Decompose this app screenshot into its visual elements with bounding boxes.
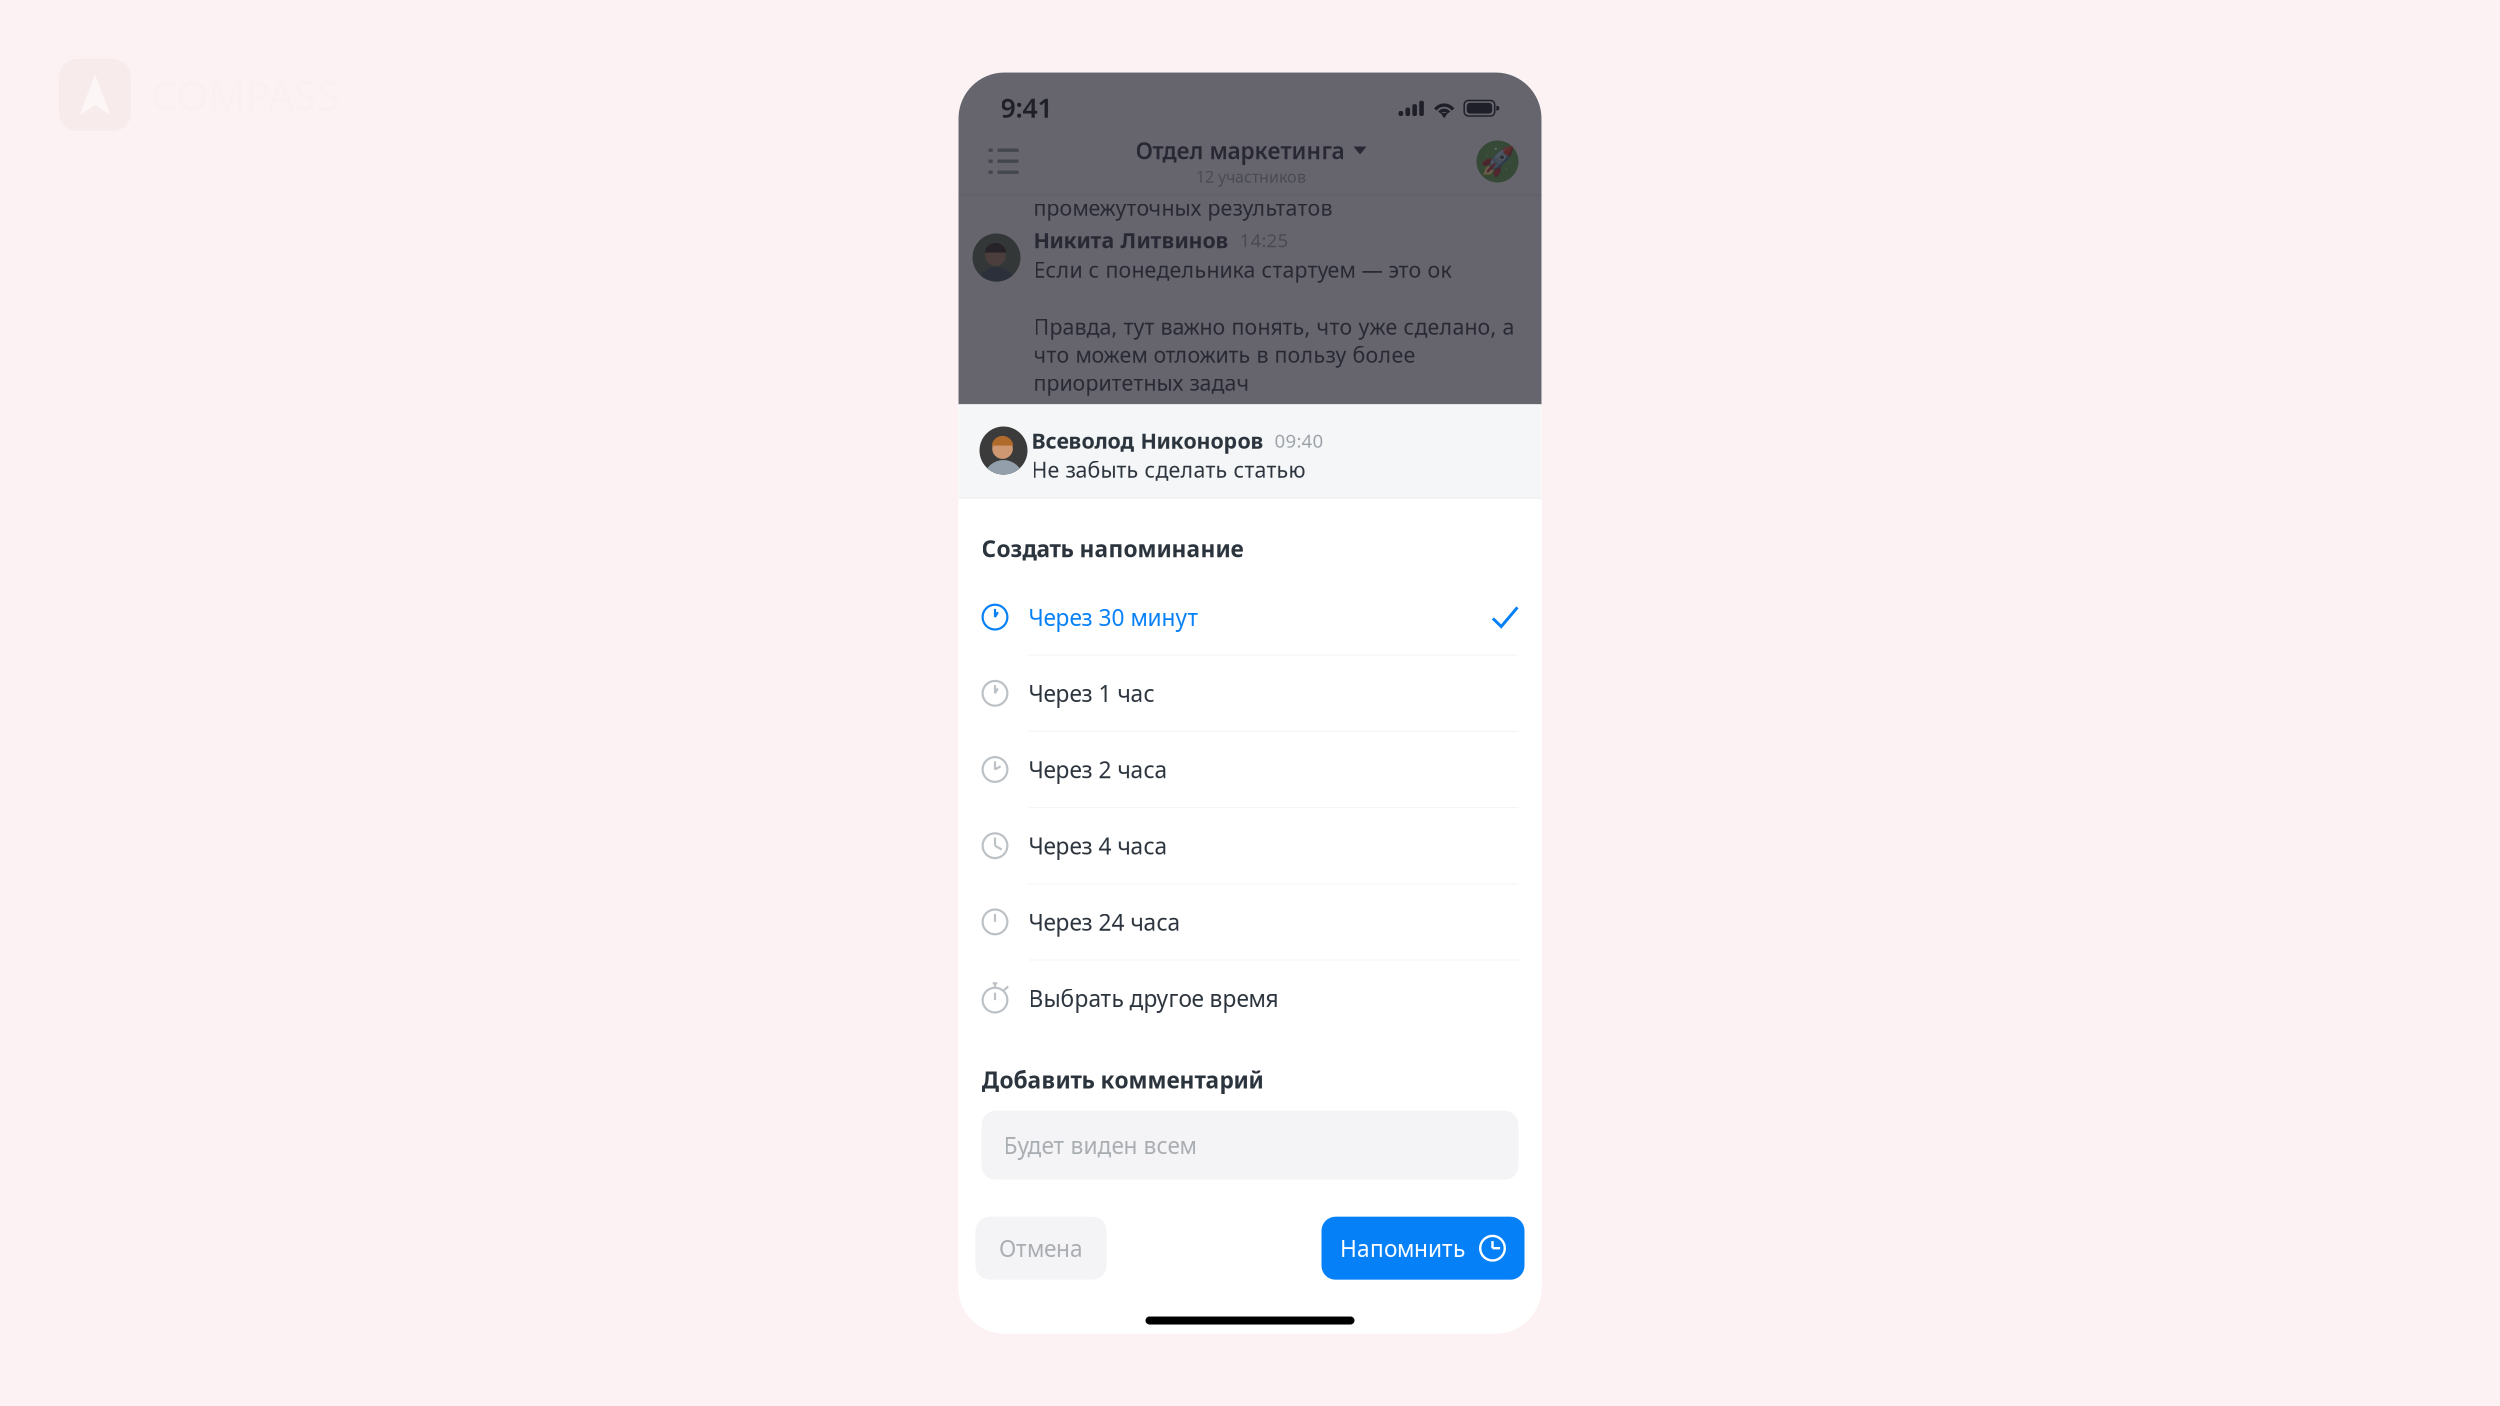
staticText: Будет виден всем xyxy=(1003,1130,1196,1160)
button[interactable]: Список тредов xyxy=(981,139,1025,183)
staticText: Создать напоминание xyxy=(981,533,1243,563)
button[interactable]: Отмена xyxy=(975,1217,1106,1280)
button[interactable]: Через 30 минут xyxy=(981,579,1518,656)
staticText: что можем отложить в пользу более xyxy=(1033,340,1415,369)
staticText: Никита Литвинов xyxy=(1033,226,1228,254)
staticText: Через 1 час xyxy=(1028,678,1154,708)
staticText: 9:41 xyxy=(1000,90,1052,125)
button[interactable]: Через 1 час xyxy=(981,656,1518,732)
button[interactable]: Выбрать другое время xyxy=(981,960,1518,1037)
staticText: 🚀 xyxy=(1480,145,1515,177)
button[interactable]: Через 2 часа xyxy=(981,732,1518,808)
button[interactable]: Через 4 часа xyxy=(981,808,1518,884)
button[interactable]: Участники чата xyxy=(1476,140,1518,182)
staticText: Отдел маркетинга xyxy=(1135,135,1344,165)
staticText: Если с понедельника стартуем — это ок xyxy=(1033,255,1451,284)
staticText: Через 4 часа xyxy=(1028,831,1167,861)
button[interactable]: Напомнить xyxy=(1321,1217,1524,1280)
staticText: Отмена xyxy=(999,1233,1083,1263)
staticText: Через 2 часа xyxy=(1028,754,1167,784)
staticText: 14:25 xyxy=(1239,228,1288,252)
staticText: 09:40 xyxy=(1274,428,1323,453)
button[interactable]: Будет виден всем xyxy=(981,1111,1518,1180)
staticText: Всеволод Никоноров xyxy=(1031,426,1263,455)
button[interactable]: Через 24 часа xyxy=(981,884,1518,960)
staticText: Напомнить xyxy=(1340,1233,1465,1263)
staticText: Выбрать другое время xyxy=(1028,983,1278,1013)
staticText: Через 30 минут xyxy=(1028,602,1198,632)
staticText: приоритетных задач xyxy=(1033,368,1249,397)
staticText: Правда, тут важно понять, что уже сделан… xyxy=(1033,312,1514,341)
staticText: промежуточных результатов xyxy=(1033,193,1332,222)
staticText: Не забыть сделать статью xyxy=(1031,455,1305,484)
staticText: 12 участников xyxy=(1196,166,1306,187)
staticText: Добавить комментарий xyxy=(981,1065,1263,1095)
staticText: Через 24 часа xyxy=(1028,907,1180,937)
